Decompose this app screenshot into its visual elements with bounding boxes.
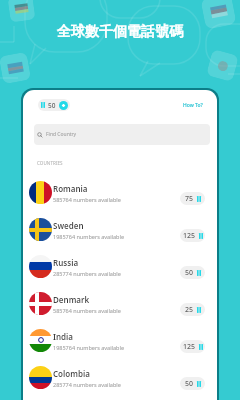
staticText: 50 [48, 101, 56, 110]
button[interactable]: 50 [38, 99, 70, 111]
button[interactable]: Russia [23, 248, 217, 285]
staticText: 125 [183, 342, 196, 352]
button[interactable]: 50 [180, 377, 205, 390]
staticText: 585764 numbers available [53, 307, 121, 314]
button[interactable]: Denmark [23, 285, 217, 322]
staticText: 1985764 numbers available [53, 344, 125, 351]
other: Add credits [59, 101, 68, 110]
staticText: 75 [185, 194, 194, 204]
button[interactable]: Sweden [23, 211, 217, 248]
staticText: 125 [183, 231, 196, 241]
staticText: 50 [185, 379, 194, 389]
staticText: 50 [185, 268, 194, 278]
staticText: Romania [53, 183, 88, 194]
staticText: 285774 numbers available [53, 270, 121, 277]
staticText: Denmark [53, 294, 90, 305]
button[interactable]: India [23, 322, 217, 359]
staticText: 全球數千個電話號碼 [57, 23, 183, 41]
staticText: Russia [53, 257, 79, 268]
button[interactable]: 125 [180, 229, 205, 242]
button[interactable]: How To? [181, 100, 205, 111]
button[interactable]: Romania [23, 174, 217, 211]
staticText: Sweden [53, 220, 84, 231]
staticText: 285774 numbers available [53, 381, 121, 388]
button[interactable]: 125 [180, 340, 205, 353]
button[interactable]: Colombia [23, 359, 217, 396]
button[interactable]: Find Country [34, 124, 210, 145]
staticText: How To? [183, 102, 203, 109]
staticText: 585764 numbers available [53, 196, 121, 203]
button[interactable]: 25 [180, 303, 205, 316]
staticText: Find Country [46, 131, 77, 138]
staticText: 1985764 numbers available [53, 233, 125, 240]
button[interactable]: 75 [180, 192, 205, 205]
staticText: 25 [185, 305, 194, 315]
staticText: COUNTRIES [37, 160, 63, 166]
staticText: Colombia [53, 368, 90, 379]
staticText: India [53, 331, 74, 342]
button[interactable]: 50 [180, 266, 205, 279]
